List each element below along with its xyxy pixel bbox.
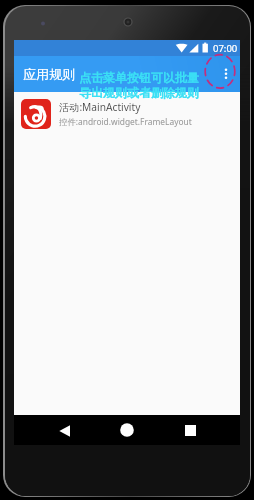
- staticText: 导出规则或者删除规则: [79, 85, 199, 100]
- button[interactable]: More options: [215, 58, 237, 80]
- staticText: 07:00: [213, 42, 238, 55]
- button[interactable]: Home: [113, 416, 141, 444]
- button[interactable]: Recent apps: [176, 416, 204, 444]
- staticText: 控件:android.widget.FrameLayout: [59, 116, 192, 127]
- button[interactable]: Back: [50, 417, 78, 445]
- staticText: 活动:MainActivity: [59, 100, 141, 114]
- staticText: 点击菜单按钮可以批量: [79, 70, 199, 85]
- staticText: 应用规则: [23, 66, 75, 82]
- button[interactable]: 活动:MainActivity: [14, 92, 240, 135]
